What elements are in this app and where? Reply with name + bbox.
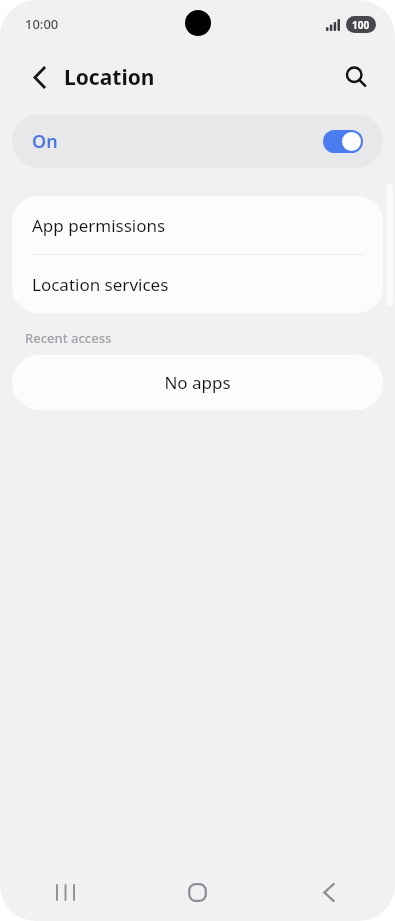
button[interactable]: Home (131, 855, 263, 921)
staticText: App permissions (32, 214, 166, 237)
button[interactable]: No apps (12, 355, 383, 410)
button[interactable]: Search (337, 58, 375, 96)
button[interactable]: On (12, 114, 383, 168)
button[interactable]: Navigate up (22, 60, 56, 94)
button[interactable]: Location services (12, 255, 383, 313)
staticText: No apps (164, 371, 231, 394)
staticText: Location services (32, 273, 169, 296)
staticText: 100 (352, 18, 370, 32)
button[interactable]: App permissions (12, 196, 383, 254)
staticText: 10:00 (25, 15, 59, 33)
staticText: Location (64, 63, 155, 92)
staticText: On (32, 129, 58, 154)
button[interactable]: Back (263, 855, 395, 921)
button[interactable]: Recent apps (0, 855, 131, 921)
staticText: Recent access (25, 329, 112, 347)
